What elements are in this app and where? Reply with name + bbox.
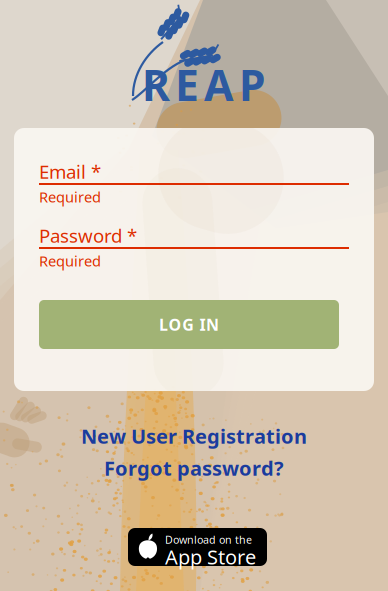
staticText: Required xyxy=(39,251,101,270)
staticText: Forgot password? xyxy=(104,455,284,481)
button[interactable]: New User Registration xyxy=(0,421,388,451)
staticText: App Store xyxy=(165,543,256,570)
staticText: LOG IN xyxy=(159,314,219,335)
staticText: Download on the xyxy=(165,532,252,547)
button[interactable]: LOG IN xyxy=(39,300,339,349)
staticText: Email * xyxy=(39,159,101,184)
staticText: REAP xyxy=(142,56,265,113)
staticText: Password * xyxy=(39,223,137,248)
button[interactable]: Download on the App Store xyxy=(128,528,267,566)
staticText: New User Registration xyxy=(81,423,307,449)
button[interactable]: Forgot password? xyxy=(0,453,388,483)
staticText: Required xyxy=(39,187,101,206)
